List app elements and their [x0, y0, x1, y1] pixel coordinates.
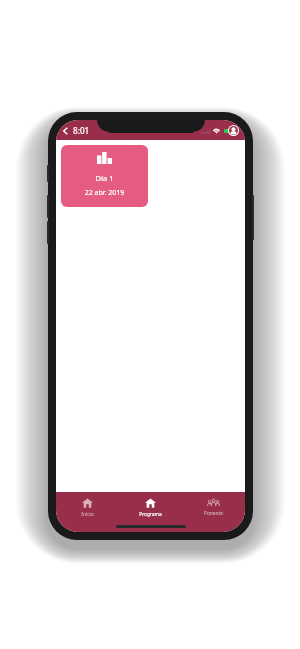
staticText: Programa — [139, 511, 162, 518]
button[interactable]: Back — [61, 125, 90, 136]
button[interactable]: Profile — [228, 125, 239, 136]
button[interactable]: Ponente — [182, 492, 245, 517]
staticText: 8:01 — [73, 125, 90, 136]
button[interactable]: Día 1 — [61, 145, 148, 207]
button[interactable]: Programa — [119, 492, 182, 518]
staticText: Ponente — [204, 510, 223, 517]
other: Back — [61, 125, 69, 136]
staticText: Día 1 — [61, 173, 148, 183]
staticText: 22 abr. 2019 — [61, 188, 148, 198]
button[interactable]: Inicio — [56, 492, 119, 518]
staticText: Inicio — [81, 511, 94, 518]
